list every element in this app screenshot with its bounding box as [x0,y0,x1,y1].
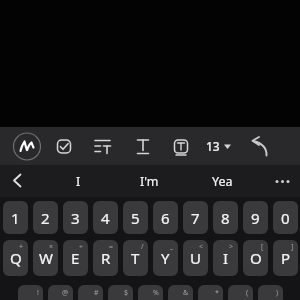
staticText: 1 [11,208,20,228]
staticText: O [250,248,262,268]
button[interactable]: $ [108,285,133,300]
staticText: ) [276,288,279,298]
button[interactable]: E [63,240,88,276]
button[interactable]: # [78,285,103,300]
button[interactable]: % [138,285,163,300]
staticText: ] [291,242,294,252]
button[interactable]: ( [228,285,253,300]
button[interactable]: 4 [93,201,118,234]
button[interactable]: Yea [192,165,252,197]
staticText: [ [261,242,264,252]
button[interactable]: 3 [63,201,88,234]
staticText: + [19,242,24,252]
button[interactable] [129,132,157,160]
button[interactable]: P [273,240,298,276]
button[interactable]: 9 [243,201,268,234]
button[interactable]: O [243,240,268,276]
button[interactable] [0,165,34,197]
staticText: R [101,248,111,268]
button[interactable]: 2 [33,201,58,234]
staticText: I [223,248,229,268]
staticText: I'm [140,173,159,190]
staticText: _ [170,242,174,252]
button[interactable]: Q [3,240,28,276]
staticText: ( [246,288,249,298]
staticText: $ [124,288,129,298]
button[interactable]: 8 [213,201,238,234]
staticText: / [141,242,144,252]
button[interactable]: Y [153,240,178,276]
button[interactable]: W [33,240,58,276]
button[interactable]: 5 [123,201,148,234]
staticText: W [39,248,53,268]
button[interactable]: I [48,165,108,197]
button[interactable]: * [198,285,223,300]
staticText: 2 [41,208,50,228]
button[interactable]: 13 [203,127,223,165]
staticText: % [153,288,159,298]
button[interactable]: R [93,240,118,276]
staticText: I [76,173,81,190]
staticText: = [109,242,114,252]
staticText: 0 [281,208,290,228]
staticText: 13 [206,138,220,154]
staticText: ÷ [79,242,84,252]
button[interactable]: 1 [3,201,28,234]
button[interactable]: 0 [273,201,298,234]
staticText: Q [10,248,22,268]
staticText: > [229,242,234,252]
button[interactable] [50,132,78,160]
button[interactable]: @ [48,285,73,300]
staticText: 9 [251,208,260,228]
button[interactable]: I [213,240,238,276]
button[interactable]: 7 [183,201,208,234]
staticText: @ [62,288,69,298]
button[interactable] [13,132,41,160]
staticText: 4 [101,208,110,228]
button[interactable] [266,165,300,197]
staticText: 6 [161,208,170,228]
staticText: P [281,248,291,268]
button[interactable]: T [123,240,148,276]
staticText: # [94,288,99,298]
staticText: ! [37,288,39,298]
staticText: 7 [191,208,200,228]
staticText: 5 [131,208,140,228]
staticText: T [131,248,140,268]
button[interactable]: ! [18,285,43,300]
staticText: < [199,242,204,252]
button[interactable]: 6 [153,201,178,234]
button[interactable]: & [168,285,193,300]
button[interactable]: ) [258,285,283,300]
staticText: × [49,242,54,252]
staticText: Y [161,248,170,268]
button[interactable]: U [183,240,208,276]
button[interactable]: I'm [119,165,179,197]
staticText: 8 [221,208,230,228]
button[interactable] [246,132,274,160]
staticText: U [190,248,201,268]
button[interactable] [89,132,117,160]
staticText: & [183,288,189,298]
staticText: E [71,248,80,268]
staticText: Yea [212,173,233,190]
button[interactable] [167,132,195,160]
staticText: 3 [71,208,80,228]
staticText: * [215,288,219,298]
